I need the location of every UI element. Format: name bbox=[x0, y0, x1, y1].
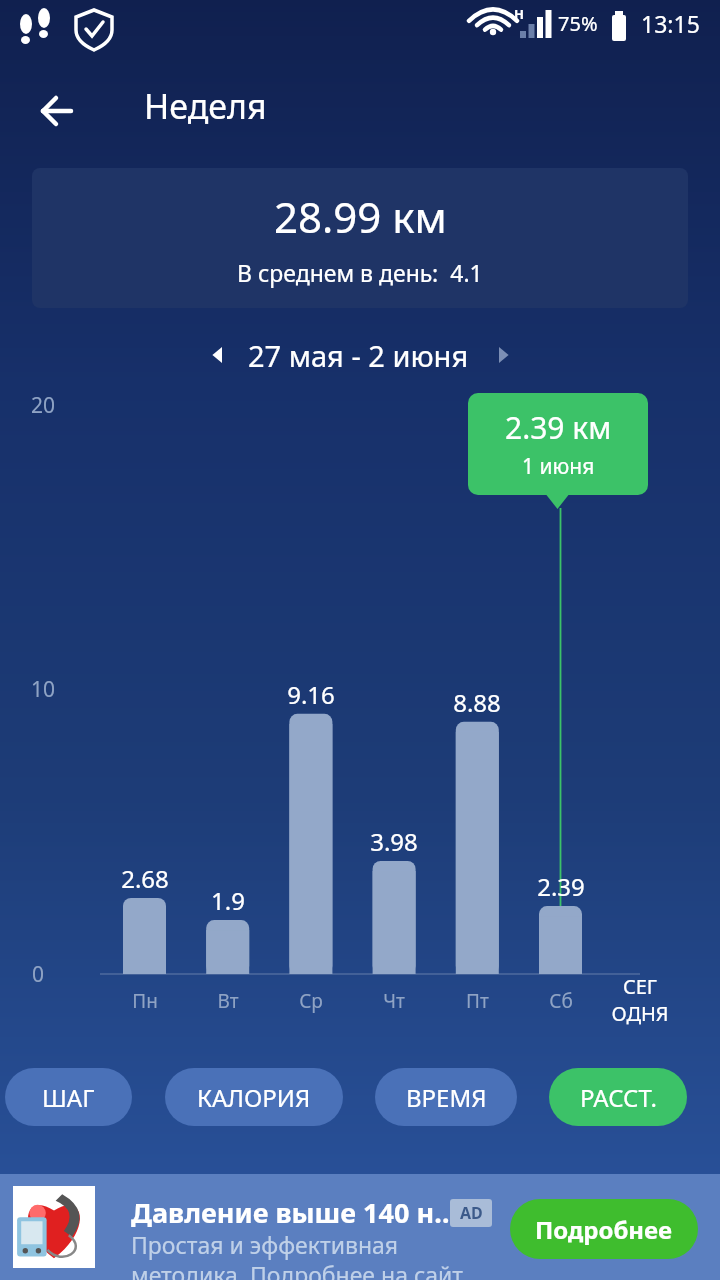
staticText: 1 июня bbox=[522, 452, 595, 481]
staticText: КАЛОРИЯ bbox=[197, 1081, 311, 1114]
staticText: Неделя bbox=[144, 83, 267, 129]
staticText: СЕГ ОДНЯ bbox=[611, 973, 669, 1027]
staticText: H bbox=[514, 5, 524, 23]
staticText: ШАГ bbox=[42, 1081, 95, 1114]
staticText: Пн bbox=[132, 988, 158, 1014]
staticText: методика. Подробнее на сайт… bbox=[131, 1259, 481, 1280]
staticText: Простая и эффективная bbox=[131, 1229, 399, 1260]
staticText: 20 bbox=[31, 391, 56, 420]
button[interactable]: 28.99 км bbox=[32, 168, 688, 308]
staticText: В среднем в день: 4.1 bbox=[237, 257, 483, 288]
button[interactable]: Давление выше 140 н… bbox=[0, 1174, 720, 1280]
staticText: 75% bbox=[558, 10, 598, 37]
button[interactable]: ВРЕМЯ bbox=[375, 1068, 517, 1126]
staticText: 2.39 км bbox=[505, 407, 612, 448]
button[interactable]: 2.39 км bbox=[468, 393, 648, 495]
staticText: 27 мая - 2 июня bbox=[248, 336, 469, 375]
staticText: 28.99 км bbox=[274, 188, 447, 245]
staticText: Давление выше 140 н… bbox=[131, 1194, 458, 1231]
staticText: 2.68 bbox=[121, 862, 169, 895]
staticText: 0 bbox=[32, 960, 45, 989]
button[interactable]: РАССТ. bbox=[549, 1068, 687, 1126]
button[interactable]: Previous week bbox=[196, 333, 240, 377]
staticText: Чт bbox=[383, 988, 405, 1014]
staticText: Подробнее bbox=[535, 1213, 673, 1246]
button[interactable]: Back bbox=[24, 79, 88, 143]
staticText: РАССТ. bbox=[580, 1081, 657, 1114]
staticText: 3.98 bbox=[370, 825, 418, 858]
staticText: ВРЕМЯ bbox=[406, 1081, 487, 1114]
button[interactable]: Подробнее bbox=[510, 1199, 698, 1259]
staticText: 10 bbox=[31, 675, 56, 704]
staticText: 9.16 bbox=[287, 678, 335, 711]
staticText: 2.39 bbox=[537, 870, 585, 903]
button[interactable]: Next week bbox=[481, 333, 525, 377]
staticText: Сб bbox=[549, 988, 573, 1014]
staticText: Вт bbox=[217, 988, 239, 1014]
staticText: 13:15 bbox=[641, 8, 700, 39]
staticText: Пт bbox=[466, 988, 489, 1014]
staticText: 8.88 bbox=[453, 686, 501, 719]
staticText: 1.9 bbox=[211, 884, 245, 917]
staticText: AD bbox=[460, 1202, 483, 1224]
button[interactable]: ШАГ bbox=[5, 1068, 132, 1126]
button[interactable]: КАЛОРИЯ bbox=[165, 1068, 343, 1126]
staticText: Ср bbox=[299, 988, 323, 1014]
